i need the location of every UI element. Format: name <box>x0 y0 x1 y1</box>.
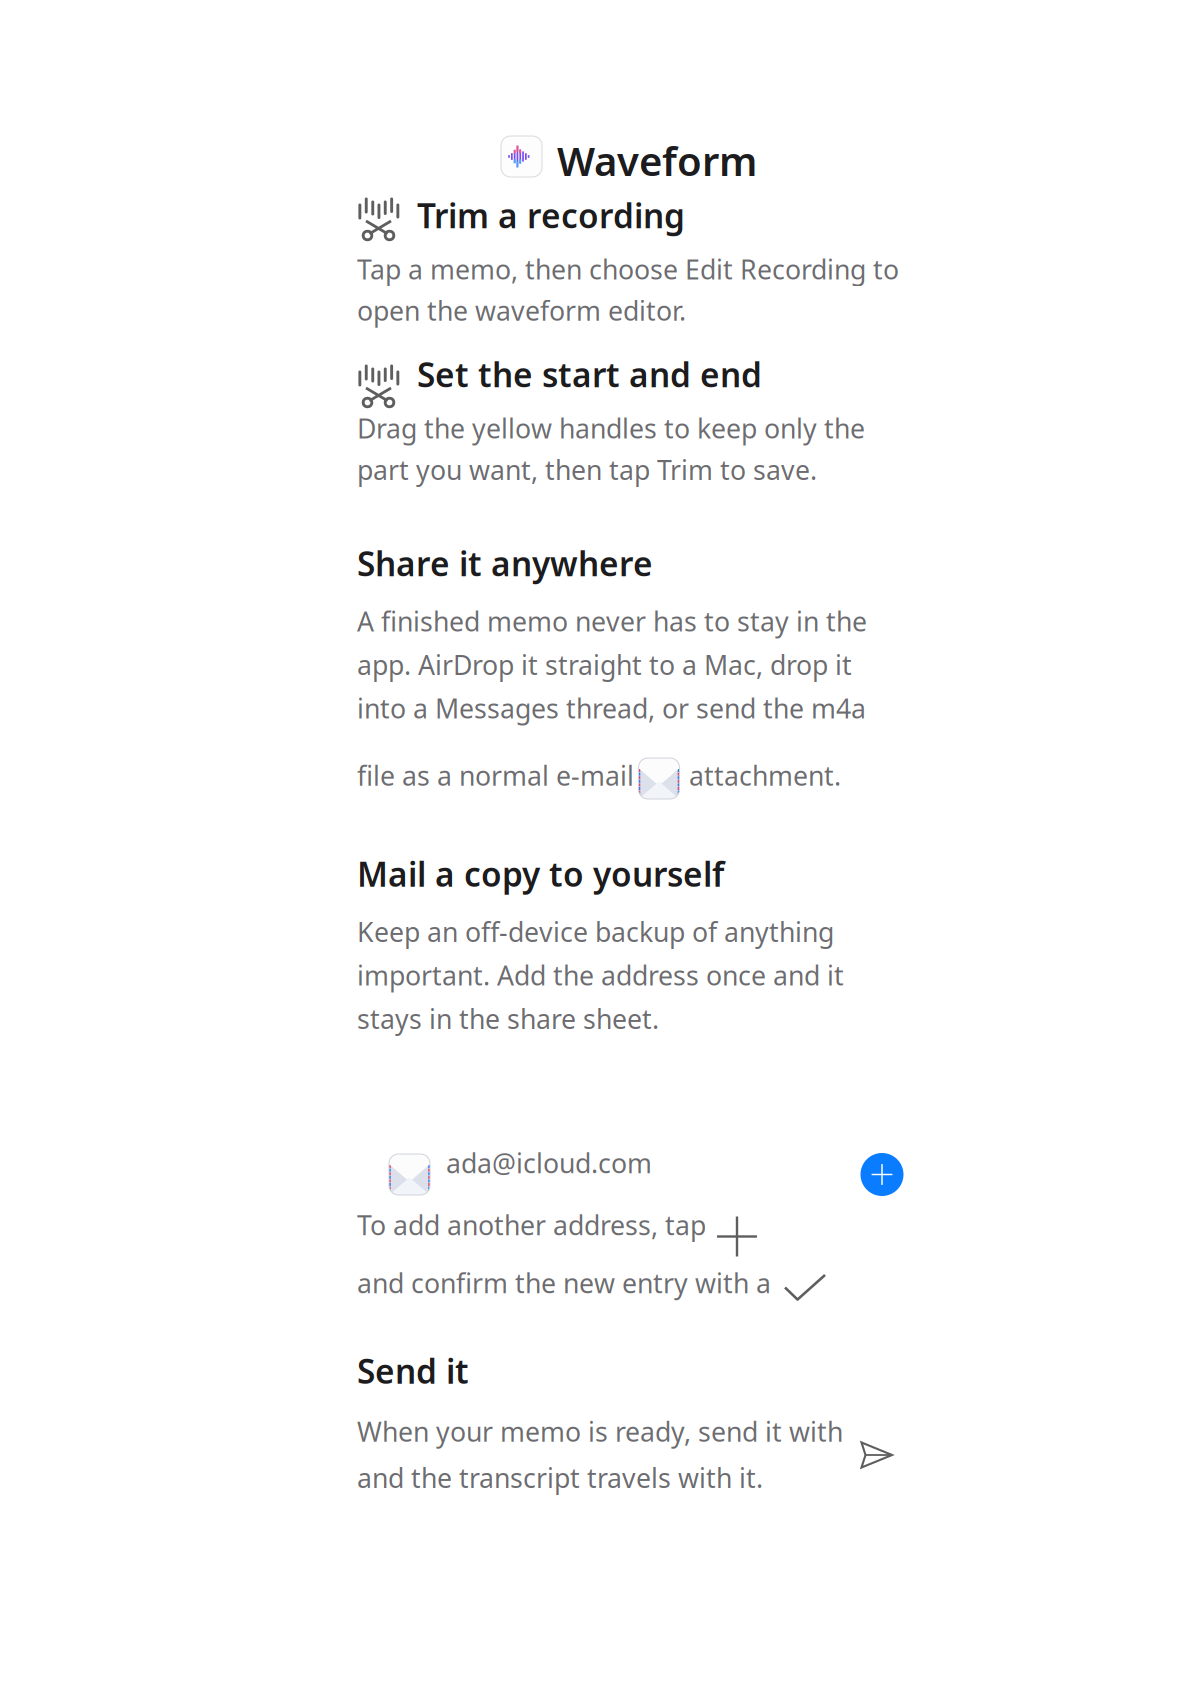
staticText: Mail a copy to yourself <box>357 852 724 896</box>
staticText: into a Messages thread, or send the m4a <box>357 690 866 726</box>
staticText: and confirm the new entry with a <box>357 1265 771 1301</box>
staticText: Keep an off-device backup of anything <box>357 914 834 949</box>
staticText: app. AirDrop it straight to a Mac, drop … <box>357 647 852 682</box>
staticText: Drag the yellow handles to keep only the <box>357 410 865 446</box>
staticText: important. Add the address once and it <box>357 957 844 993</box>
staticText: ada@icloud.com <box>446 1145 652 1180</box>
staticText: and the transcript travels with it. <box>357 1460 763 1495</box>
staticText: A finished memo never has to stay in the <box>357 604 867 639</box>
staticText: file as a normal e-mail <box>357 758 634 793</box>
staticText: Send it <box>357 1349 469 1393</box>
staticText: Tap a memo, then choose Edit Recording t… <box>357 251 899 287</box>
staticText: attachment. <box>689 758 841 793</box>
staticText: part you want, then tap Trim to save. <box>357 452 817 487</box>
staticText: Share it anywhere <box>357 541 653 586</box>
staticText: To add another address, tap <box>357 1207 706 1242</box>
staticText: Waveform <box>557 134 757 187</box>
staticText: When your memo is ready, send it with <box>357 1414 843 1449</box>
staticText: open the waveform editor. <box>357 293 686 328</box>
staticText: Trim a recording <box>417 193 685 237</box>
staticText: stays in the share sheet. <box>357 1001 659 1036</box>
staticText: Set the start and end <box>417 352 762 396</box>
